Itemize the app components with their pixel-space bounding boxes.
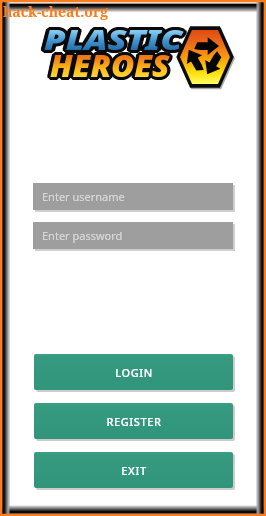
staticText: HEROES xyxy=(52,47,172,88)
staticText: PLASTIC xyxy=(45,23,184,61)
staticText: HEROES xyxy=(49,42,169,83)
staticText: HEROES xyxy=(48,47,168,88)
staticText: PLASTIC xyxy=(43,23,182,61)
staticText: HEROES xyxy=(49,48,169,89)
staticText: Enter username xyxy=(42,189,125,204)
button[interactable]: REGISTER xyxy=(34,403,233,439)
staticText: HEROES xyxy=(53,46,173,87)
staticText: HEROES xyxy=(51,42,171,83)
staticText: HEROES xyxy=(47,46,167,87)
staticText: PLASTIC xyxy=(40,21,179,59)
staticText: EXIT xyxy=(121,463,147,478)
staticText: HEROES xyxy=(50,48,170,89)
staticText: PLASTIC xyxy=(41,22,180,60)
button[interactable]: LOGIN xyxy=(34,354,233,390)
staticText: HEROES xyxy=(50,42,170,83)
staticText: HEROES xyxy=(53,45,173,86)
staticText: PLASTIC xyxy=(46,18,185,56)
staticText: PLASTIC xyxy=(48,19,187,57)
staticText: HEROES xyxy=(47,44,167,85)
staticText: hack-cheat.org xyxy=(3,2,109,21)
staticText: PLASTIC xyxy=(48,21,187,59)
button[interactable]: EXIT xyxy=(34,452,233,488)
staticText: PLASTIC xyxy=(45,17,184,55)
staticText: PLASTIC xyxy=(44,17,183,55)
button[interactable]: Enter username xyxy=(33,183,233,210)
staticText: HEROES xyxy=(48,43,168,84)
staticText: PLASTIC xyxy=(40,20,179,58)
staticText: HEROES xyxy=(50,45,170,86)
staticText: LOGIN xyxy=(115,365,153,380)
staticText: HEROES xyxy=(51,48,171,89)
staticText: PLASTIC xyxy=(44,23,183,61)
staticText: PLASTIC xyxy=(44,20,183,58)
staticText: PLASTIC xyxy=(41,18,180,56)
staticText: PLASTIC xyxy=(48,20,187,58)
staticText: HEROES xyxy=(52,43,172,84)
staticText: Enter password xyxy=(42,228,123,243)
staticText: REGISTER xyxy=(106,414,162,429)
staticText: PLASTIC xyxy=(43,17,182,55)
staticText: PLASTIC xyxy=(40,19,179,57)
staticText: HEROES xyxy=(47,45,167,86)
button[interactable]: Enter password xyxy=(33,222,233,249)
staticText: PLASTIC xyxy=(46,22,185,60)
staticText: HEROES xyxy=(53,44,173,85)
